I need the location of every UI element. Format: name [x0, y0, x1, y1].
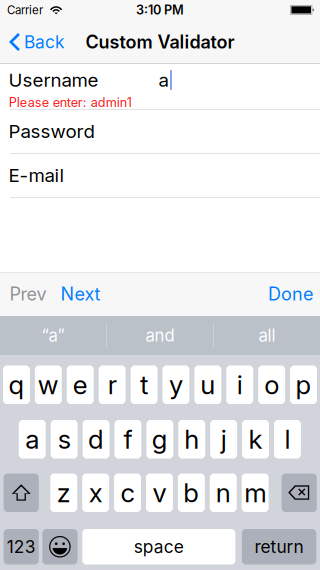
- staticText: q: [8, 369, 24, 400]
- staticText: b: [183, 477, 199, 508]
- button[interactable]: a: [19, 420, 46, 458]
- button[interactable]: Next: [52, 272, 110, 316]
- button[interactable]: Back: [0, 20, 75, 64]
- staticText: a: [25, 423, 39, 455]
- button[interactable]: s: [51, 420, 78, 458]
- staticText: g: [152, 423, 168, 455]
- button[interactable]: f: [114, 420, 141, 458]
- staticText: v: [152, 477, 166, 508]
- staticText: “a”: [41, 325, 64, 346]
- staticText: l: [284, 423, 290, 455]
- staticText: Prev: [9, 283, 46, 305]
- button[interactable]: c: [114, 473, 141, 512]
- staticText: and: [145, 325, 174, 346]
- button[interactable]: space: [82, 529, 235, 564]
- staticText: space: [134, 536, 184, 557]
- button[interactable]: 123: [4, 529, 39, 564]
- button[interactable]: return: [242, 529, 316, 564]
- staticText: d: [88, 423, 104, 455]
- staticText: u: [200, 369, 215, 400]
- staticText: a: [158, 69, 168, 91]
- button[interactable]: Delete: [282, 473, 317, 512]
- staticText: Back: [24, 31, 65, 52]
- staticText: p: [295, 369, 311, 400]
- button[interactable]: h: [178, 420, 205, 458]
- button[interactable]: w: [35, 365, 62, 404]
- staticText: f: [123, 423, 132, 455]
- button[interactable]: j: [210, 420, 237, 458]
- staticText: Custom Validator: [85, 31, 234, 53]
- button[interactable]: r: [99, 365, 126, 404]
- button[interactable]: d: [83, 420, 109, 458]
- staticText: all: [258, 325, 275, 346]
- button[interactable]: t: [131, 365, 157, 404]
- button[interactable]: Done: [258, 272, 320, 316]
- button[interactable]: z: [50, 473, 77, 512]
- staticText: Please enter: admin1: [9, 95, 132, 110]
- button[interactable]: q: [3, 365, 30, 404]
- staticText: Carrier: [7, 3, 43, 17]
- staticText: z: [57, 477, 71, 508]
- button[interactable]: and: [107, 316, 213, 355]
- button[interactable]: E-mail: [0, 153, 320, 197]
- button[interactable]: g: [146, 420, 173, 458]
- button[interactable]: Prev: [0, 272, 52, 316]
- button[interactable]: o: [258, 365, 285, 404]
- staticText: 3:10 PM: [136, 2, 184, 18]
- staticText: x: [89, 477, 103, 508]
- button[interactable]: y: [162, 365, 189, 404]
- button[interactable]: m: [242, 473, 269, 512]
- button[interactable]: i: [226, 365, 253, 404]
- button[interactable]: x: [82, 473, 109, 512]
- button[interactable]: “a”: [0, 316, 106, 355]
- staticText: c: [120, 477, 134, 508]
- staticText: k: [249, 423, 263, 455]
- button[interactable]: p: [290, 365, 317, 404]
- staticText: w: [38, 369, 59, 400]
- staticText: s: [58, 423, 71, 455]
- staticText: i: [237, 369, 243, 400]
- staticText: Password: [8, 120, 94, 143]
- button[interactable]: v: [146, 473, 173, 512]
- staticText: t: [140, 369, 148, 400]
- staticText: 123: [7, 536, 36, 557]
- staticText: h: [184, 423, 199, 455]
- button[interactable]: n: [210, 473, 237, 512]
- staticText: j: [221, 423, 227, 455]
- button[interactable]: e: [67, 365, 94, 404]
- staticText: o: [264, 369, 279, 400]
- button[interactable]: all: [214, 316, 320, 355]
- button[interactable]: l: [274, 420, 301, 458]
- staticText: r: [108, 369, 117, 400]
- staticText: E-mail: [8, 164, 64, 187]
- button[interactable]: k: [242, 420, 269, 458]
- staticText: m: [244, 477, 266, 508]
- button[interactable]: u: [194, 365, 221, 404]
- staticText: e: [73, 369, 88, 400]
- button[interactable]: Shift: [4, 473, 39, 512]
- button[interactable]: Emoji keyboard: [42, 529, 77, 564]
- staticText: Done: [268, 283, 313, 305]
- staticText: n: [216, 477, 231, 508]
- staticText: Next: [60, 283, 100, 305]
- button[interactable]: b: [178, 473, 205, 512]
- button[interactable]: Password: [0, 109, 320, 153]
- staticText: return: [255, 536, 304, 557]
- staticText: y: [169, 369, 183, 400]
- staticText: Username: [8, 69, 98, 91]
